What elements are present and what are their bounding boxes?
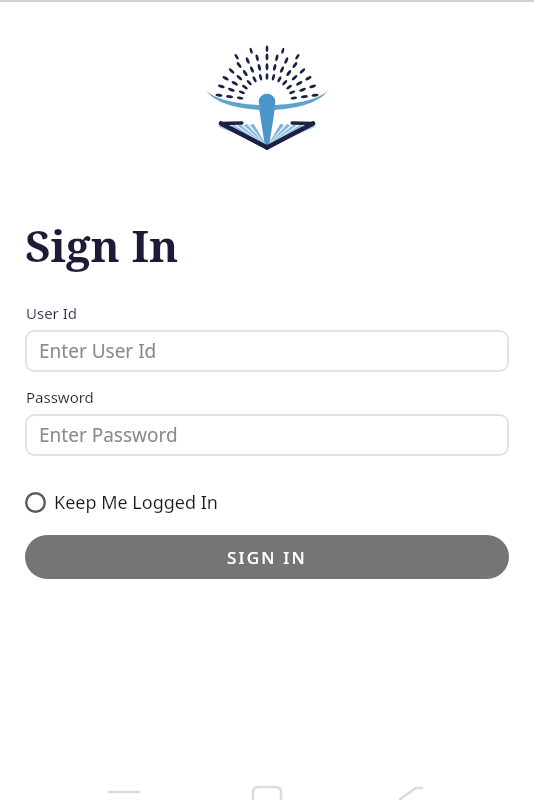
staticText: SIGN IN [227, 546, 307, 569]
staticText: Enter Password [39, 422, 178, 448]
button[interactable]: Keep Me Logged In [22, 486, 221, 519]
staticText: Sign In [25, 215, 179, 275]
button[interactable]: Enter User Id [25, 330, 509, 372]
button[interactable]: Recents [391, 784, 431, 800]
button[interactable]: Back [104, 784, 144, 800]
staticText: Password [26, 387, 94, 407]
staticText: User Id [26, 303, 78, 323]
staticText: Keep Me Logged In [54, 490, 218, 515]
button[interactable]: SIGN IN [25, 535, 509, 579]
button[interactable]: Home [247, 784, 287, 800]
button[interactable]: Enter Password [25, 414, 509, 456]
staticText: Enter User Id [39, 338, 157, 364]
